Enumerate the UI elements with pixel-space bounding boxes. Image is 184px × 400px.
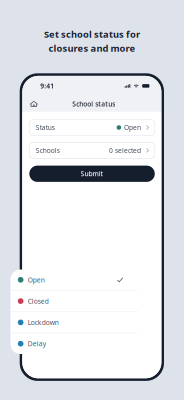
button[interactable]: Closed (10, 291, 138, 311)
staticText: Open (124, 123, 141, 132)
staticText: Schools (36, 146, 60, 155)
button[interactable]: Delay (10, 333, 138, 354)
button[interactable]: Home (27, 97, 41, 111)
staticText: School status (72, 99, 115, 108)
button[interactable]: Schools (29, 142, 155, 158)
button[interactable]: Submit (29, 166, 155, 182)
staticText: Submit (81, 169, 104, 178)
button[interactable]: Lockdown (10, 312, 138, 333)
staticText: Delay (28, 339, 46, 348)
staticText: Status (36, 123, 55, 132)
staticText: Set school status for (44, 28, 140, 40)
button[interactable]: Open (10, 269, 138, 290)
staticText: Lockdown (28, 318, 59, 327)
staticText: 0 selected (109, 146, 141, 155)
staticText: closures and more (48, 42, 135, 54)
staticText: Open (28, 275, 45, 284)
staticText: 9:41 (40, 81, 54, 90)
button[interactable]: Status (29, 119, 155, 135)
staticText: Closed (28, 297, 49, 306)
